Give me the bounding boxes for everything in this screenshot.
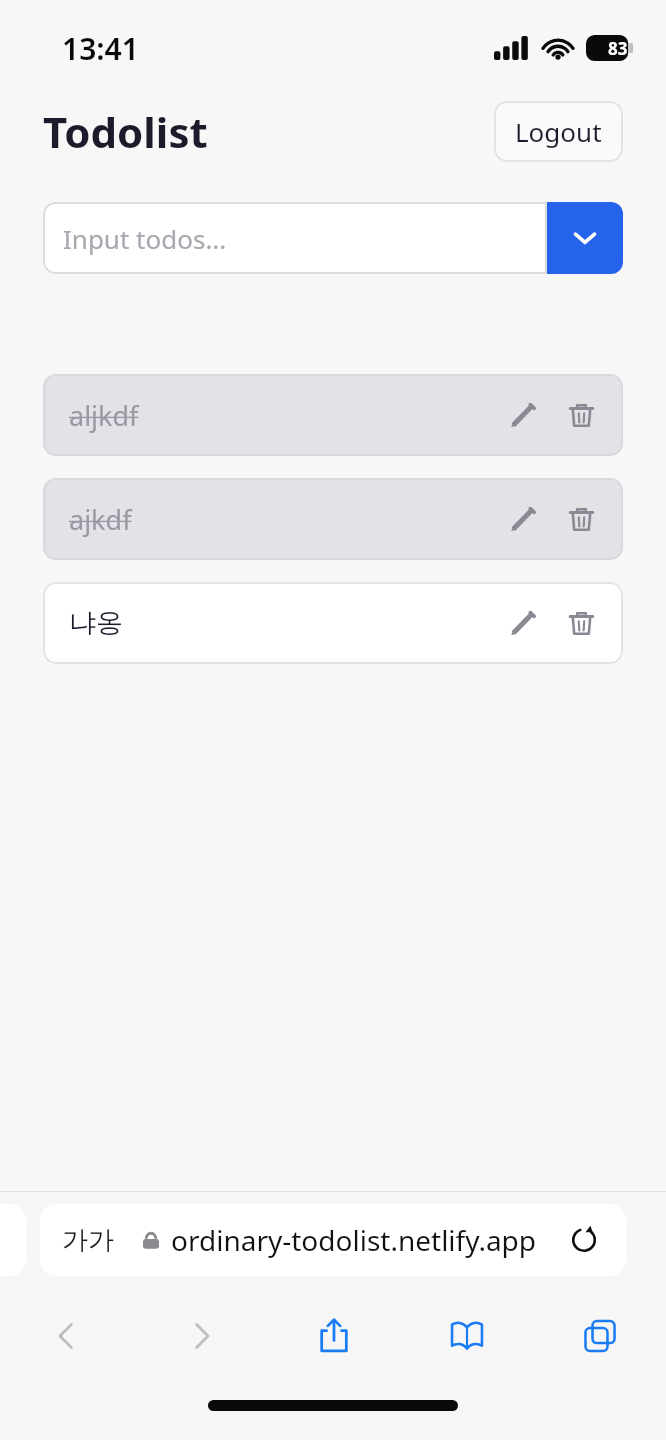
button[interactable]: 가가 <box>40 1204 626 1276</box>
staticText: ajkdf <box>69 501 497 538</box>
button[interactable]: Edit <box>497 597 549 649</box>
staticText: 가가 <box>62 1224 114 1257</box>
button[interactable]: Edit <box>497 389 549 441</box>
staticText: 83 <box>608 37 628 60</box>
button[interactable]: Tabs <box>533 1288 666 1384</box>
button[interactable]: Edit <box>497 493 549 545</box>
staticText: aljkdf <box>69 397 497 434</box>
button[interactable]: Back <box>0 1288 134 1384</box>
button[interactable]: aljkdf <box>43 374 623 456</box>
staticText: ordinary-todolist.netlify.app <box>171 1221 537 1259</box>
button[interactable]: Logout <box>494 101 623 162</box>
staticText: Todolist <box>43 103 208 160</box>
button[interactable]: ajkdf <box>43 478 623 560</box>
button[interactable]: 가가 <box>62 1224 114 1257</box>
button[interactable]: Delete <box>555 493 607 545</box>
staticText: Logout <box>515 114 602 149</box>
button[interactable]: Forward <box>134 1288 267 1384</box>
staticText: 13:41 <box>62 28 139 69</box>
button[interactable]: Delete <box>555 389 607 441</box>
button[interactable]: 냐옹 <box>43 582 623 664</box>
button[interactable]: Delete <box>555 597 607 649</box>
button[interactable]: Reload <box>564 1220 604 1260</box>
button[interactable]: Bookmarks <box>400 1288 533 1384</box>
button[interactable]: Share <box>267 1288 400 1384</box>
button[interactable]: Input todos... <box>43 202 547 274</box>
button[interactable]: Add todo <box>547 202 623 274</box>
staticText: Input todos... <box>63 221 227 256</box>
staticText: 냐옹 <box>69 606 497 640</box>
